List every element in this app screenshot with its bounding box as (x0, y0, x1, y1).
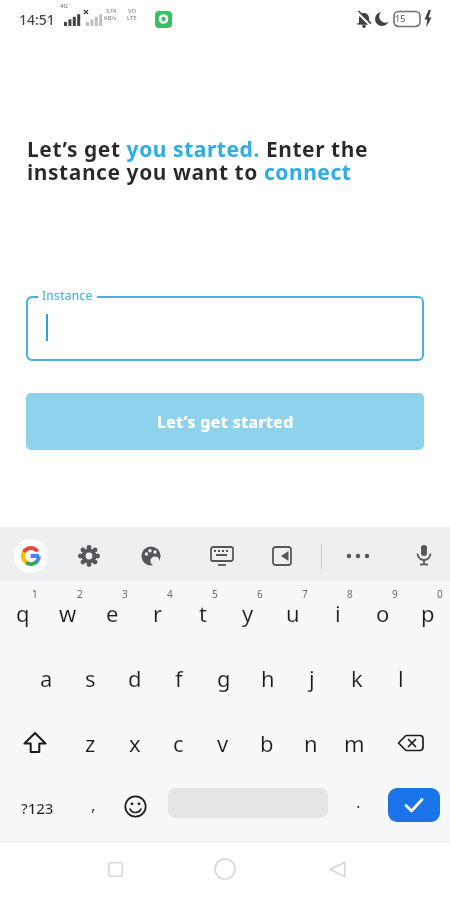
staticText: 8 (347, 587, 353, 601)
staticText: 4G (60, 2, 68, 10)
staticText: ?123 (21, 798, 54, 818)
staticText: e (106, 598, 119, 628)
staticText: j (309, 663, 315, 693)
button[interactable] (113, 786, 157, 826)
button[interactable]: h (245, 646, 290, 710)
button[interactable]: s (68, 646, 113, 710)
staticText: 574 (106, 7, 117, 15)
button[interactable]: v (200, 711, 245, 775)
button[interactable] (93, 847, 137, 891)
button[interactable]: f (156, 646, 201, 710)
staticText: KB/s (104, 14, 117, 22)
staticText: 2 (77, 587, 83, 601)
button[interactable] (315, 847, 359, 891)
staticText: f (175, 663, 183, 693)
button[interactable]: u (270, 581, 315, 645)
staticText: b (260, 728, 274, 758)
staticText: r (153, 598, 163, 628)
staticText: o (376, 598, 390, 628)
button[interactable]: o (360, 581, 405, 645)
staticText: l (398, 663, 404, 693)
staticText: k (351, 663, 363, 693)
button[interactable]: y (225, 581, 270, 645)
staticText: 0 (437, 587, 443, 601)
button[interactable]: j (289, 646, 334, 710)
staticText: q (16, 598, 30, 628)
staticText: s (85, 663, 96, 693)
staticText: 9 (392, 587, 398, 601)
button[interactable]: k (334, 646, 379, 710)
staticText: VO (128, 7, 137, 15)
button[interactable] (201, 535, 243, 577)
staticText: . (356, 790, 361, 813)
staticText: Instance (42, 287, 93, 303)
button[interactable] (68, 535, 110, 577)
staticText: 6 (257, 587, 263, 601)
button[interactable] (130, 535, 172, 577)
staticText: p (421, 598, 435, 628)
button[interactable]: z (68, 711, 113, 775)
button[interactable]: w (45, 581, 90, 645)
staticText: t (199, 598, 207, 628)
staticText: 4 (167, 587, 173, 601)
button[interactable]: c (156, 711, 201, 775)
button[interactable] (261, 535, 303, 577)
staticText: d (128, 663, 142, 693)
button[interactable]: t (180, 581, 225, 645)
staticText: , (91, 793, 96, 816)
staticText: Let’s get started (157, 411, 294, 433)
staticText: h (261, 663, 275, 693)
staticText: Let’s get you started. Enter the instanc… (27, 135, 369, 186)
button[interactable]: q (0, 581, 45, 645)
button[interactable]: Let’s get started (26, 393, 424, 450)
button[interactable]: b (244, 711, 289, 775)
staticText: 5 (212, 587, 218, 601)
staticText: v (217, 728, 229, 758)
button[interactable]: e (90, 581, 135, 645)
staticText: a (40, 663, 53, 693)
button[interactable]: x (112, 711, 157, 775)
staticText: 7 (302, 587, 308, 601)
button[interactable]: r (135, 581, 180, 645)
staticText: w (59, 598, 77, 628)
staticText: 15 (395, 12, 406, 24)
button[interactable]: a (24, 646, 69, 710)
button[interactable]: n (288, 711, 333, 775)
button[interactable]: d (112, 646, 157, 710)
staticText: 14:51 (19, 10, 55, 29)
button[interactable]: i (315, 581, 360, 645)
button[interactable]: p (405, 581, 450, 645)
staticText: 1 (32, 587, 38, 601)
button[interactable] (14, 539, 48, 573)
staticText: 3 (122, 587, 128, 601)
staticText: z (85, 728, 96, 758)
button[interactable] (403, 535, 445, 577)
button[interactable]: ?123 (12, 786, 62, 830)
button[interactable]: g (201, 646, 246, 710)
staticText: x (129, 728, 141, 758)
button[interactable] (203, 847, 247, 891)
button[interactable] (13, 721, 57, 765)
staticText: g (217, 663, 231, 693)
button[interactable]: m (332, 711, 377, 775)
staticText: u (286, 598, 300, 628)
staticText: n (304, 728, 318, 758)
button[interactable] (388, 721, 432, 765)
staticText: y (242, 598, 254, 628)
button[interactable] (26, 296, 424, 361)
staticText: i (335, 598, 341, 628)
button[interactable] (388, 788, 440, 822)
staticText: m (344, 728, 365, 758)
staticText: c (173, 728, 184, 758)
button[interactable] (337, 535, 379, 577)
button[interactable]: l (378, 646, 423, 710)
staticText: LTE (127, 14, 137, 22)
